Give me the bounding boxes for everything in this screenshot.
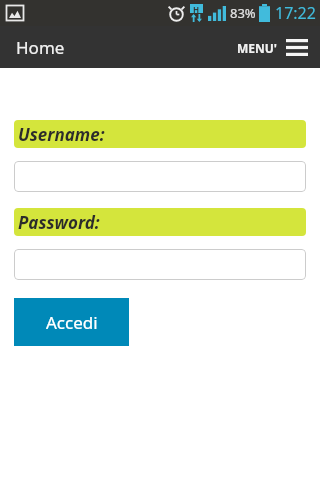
button[interactable] bbox=[14, 249, 306, 280]
staticText: H bbox=[193, 4, 200, 13]
staticText: 83% bbox=[230, 4, 256, 22]
staticText: Username: bbox=[18, 123, 105, 146]
button[interactable]: Home bbox=[16, 36, 65, 59]
button[interactable]: MENU' bbox=[233, 35, 312, 60]
button[interactable] bbox=[14, 161, 306, 192]
staticText: Password: bbox=[18, 211, 100, 234]
staticText: Home bbox=[16, 36, 65, 59]
staticText: 17:22 bbox=[275, 2, 316, 24]
other: Open menu bbox=[286, 39, 308, 56]
button[interactable]: Accedi bbox=[14, 298, 129, 346]
staticText: Accedi bbox=[46, 311, 98, 334]
staticText: MENU' bbox=[237, 40, 278, 56]
